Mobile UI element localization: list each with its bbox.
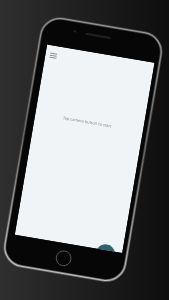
button[interactable]: Camera — [97, 243, 116, 252]
staticText: Tap camera button to start — [15, 110, 141, 253]
button[interactable]: Open navigation menu — [45, 48, 61, 64]
